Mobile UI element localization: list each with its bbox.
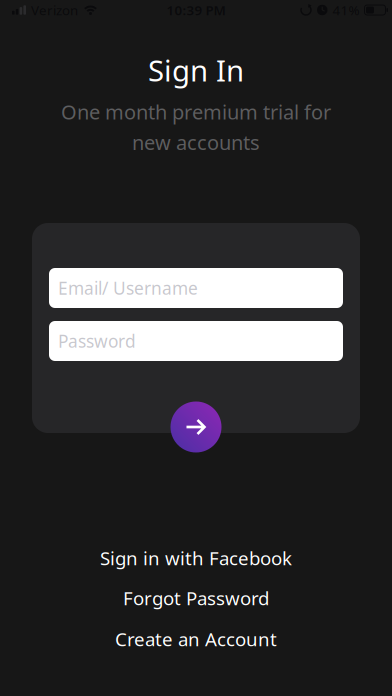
staticText: Email/ Username (58, 276, 198, 299)
staticText: Sign In (148, 50, 244, 89)
textField[interactable]: Password (49, 321, 343, 361)
button[interactable]: Sign in with Facebook (100, 546, 292, 570)
staticText: Password (58, 329, 136, 352)
textField[interactable]: Email/ Username (49, 268, 343, 308)
staticText: Forgot Password (123, 586, 269, 610)
staticText: One month premium trial for (61, 98, 331, 125)
staticText: 41% (332, 1, 359, 19)
button[interactable]: Forgot Password (123, 586, 269, 610)
staticText: Create an Account (115, 627, 277, 651)
button[interactable]: Create an Account (115, 627, 277, 651)
staticText: 10:39 PM (166, 1, 225, 19)
button[interactable]: Sign In (170, 401, 221, 452)
staticText: Sign in with Facebook (100, 546, 292, 570)
staticText: Verizon (31, 1, 78, 19)
staticText: new accounts (132, 129, 260, 156)
